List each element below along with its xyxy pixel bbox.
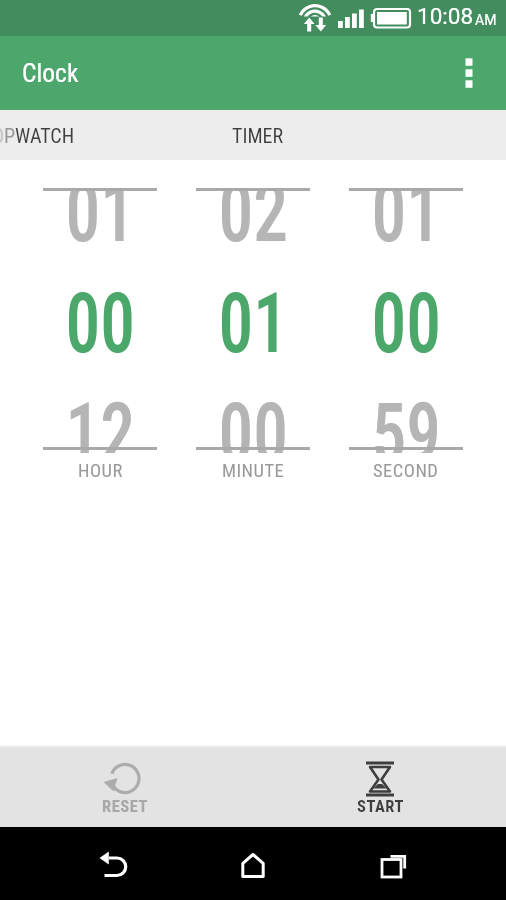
button[interactable]: OPWATCH [0, 110, 122, 160]
staticText: MINUTE [222, 460, 285, 482]
staticText: 00 [371, 274, 441, 372]
staticText: 01 [218, 274, 288, 372]
staticText: 01 [65, 191, 135, 242]
staticText: 01 [371, 191, 441, 242]
staticText: 59 [371, 384, 441, 453]
staticText: 10:08 [417, 3, 474, 29]
staticText: 02 [218, 191, 288, 242]
button[interactable] [365, 835, 421, 893]
staticText: TIMER [232, 124, 284, 147]
button[interactable] [43, 185, 157, 485]
button[interactable]: START [320, 745, 440, 827]
staticText: START [357, 797, 404, 816]
staticText: 12 [65, 384, 135, 453]
staticText: HOUR [78, 460, 123, 482]
staticText: Clock [22, 58, 79, 88]
button[interactable]: RESET [65, 745, 185, 827]
button[interactable] [349, 185, 463, 485]
staticText: 00 [65, 274, 135, 372]
button[interactable]: TIMER [208, 110, 308, 160]
button[interactable] [86, 835, 142, 893]
staticText: OPWATCH [0, 124, 75, 147]
staticText: SECOND [373, 460, 439, 482]
staticText: 00 [218, 384, 288, 453]
staticText: AM [475, 12, 497, 28]
button[interactable] [225, 835, 281, 893]
staticText: RESET [102, 797, 148, 816]
button[interactable] [196, 185, 310, 485]
button[interactable] [450, 46, 490, 100]
